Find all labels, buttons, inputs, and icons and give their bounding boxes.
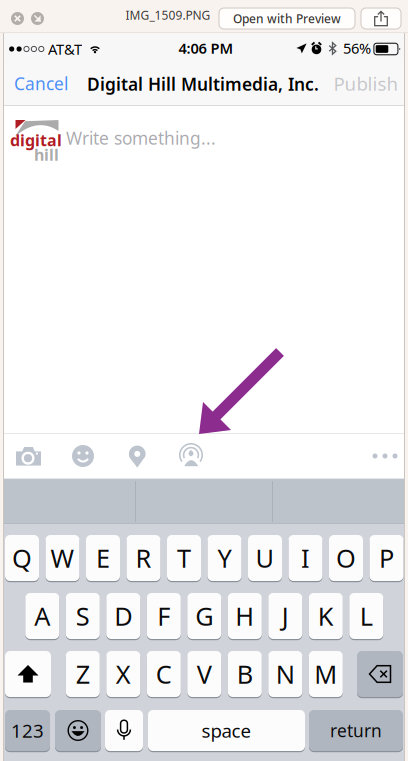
button[interactable]: Share (361, 8, 401, 29)
staticText: 123 (11, 718, 44, 743)
staticText: 4:06 PM (178, 38, 233, 58)
staticText: Z (76, 657, 90, 691)
staticText: hill (34, 144, 59, 165)
staticText: A (34, 599, 50, 633)
staticText: E (96, 541, 110, 575)
staticText: S (76, 599, 90, 633)
button[interactable]: return (309, 709, 403, 752)
button[interactable]: M (309, 650, 343, 698)
button[interactable]: U (248, 534, 282, 582)
button[interactable]: S (66, 592, 100, 640)
staticText: H (235, 599, 254, 633)
button[interactable]: Tag people (178, 443, 204, 469)
staticText: F (157, 599, 170, 633)
button[interactable]: F (147, 592, 181, 640)
staticText: G (195, 599, 213, 633)
staticText: AT&T (48, 39, 82, 59)
button[interactable]: A (25, 592, 59, 640)
button[interactable]: P (369, 534, 403, 582)
staticText: X (116, 657, 131, 691)
staticText: Open with Preview (233, 10, 341, 26)
staticText: K (318, 599, 334, 633)
staticText: space (201, 718, 251, 743)
button[interactable]: X (106, 650, 140, 698)
button[interactable]: Z (66, 650, 100, 698)
staticText: P (379, 541, 394, 575)
button[interactable]: R (126, 534, 160, 582)
staticText: Q (12, 541, 32, 575)
button[interactable]: Feeling (72, 445, 94, 467)
staticText: Digital Hill Multimedia, Inc. (87, 72, 319, 95)
staticText: IMG_1509.PNG (125, 7, 210, 23)
button[interactable]: Q (5, 534, 39, 582)
button[interactable]: Y (207, 534, 241, 582)
button[interactable]: O (329, 534, 363, 582)
staticText: Cancel (14, 72, 68, 95)
staticText: return (330, 719, 382, 742)
button[interactable] (105, 709, 143, 752)
button[interactable]: Location (128, 445, 146, 468)
button[interactable]: K (309, 592, 343, 640)
button[interactable]: Cancel (8, 62, 74, 105)
button[interactable]: H (228, 592, 262, 640)
button[interactable]: Camera (16, 446, 41, 466)
button[interactable] (357, 650, 403, 698)
staticText: V (197, 657, 212, 691)
staticText: T (177, 541, 191, 575)
button[interactable]: L (349, 592, 383, 640)
button[interactable]: More (368, 444, 402, 468)
staticText: D (114, 599, 132, 633)
staticText: N (276, 657, 295, 691)
staticText: B (237, 657, 253, 691)
button[interactable]: C (147, 650, 181, 698)
button[interactable]: E (86, 534, 120, 582)
button[interactable]: space (148, 709, 305, 752)
button[interactable]: I (288, 534, 322, 582)
staticText: I (301, 541, 310, 575)
button[interactable]: J (268, 592, 302, 640)
button[interactable]: V (187, 650, 221, 698)
button[interactable]: N (268, 650, 302, 698)
staticText: digital (10, 129, 62, 151)
staticText: R (135, 541, 151, 575)
staticText: Y (217, 541, 231, 575)
button[interactable]: D (106, 592, 140, 640)
button[interactable]: Markup (31, 12, 44, 25)
staticText: Publish (333, 71, 398, 96)
button[interactable]: Open with Preview (219, 8, 355, 29)
button[interactable]: 123 (5, 709, 50, 752)
staticText: C (156, 657, 172, 691)
staticText: U (255, 541, 274, 575)
button[interactable]: W (45, 534, 79, 582)
staticText: W (50, 541, 74, 575)
staticText: 56% (343, 38, 371, 58)
staticText: J (282, 599, 289, 633)
staticText: Write something... (66, 126, 216, 149)
button[interactable]: G (187, 592, 221, 640)
button[interactable] (5, 650, 51, 698)
button[interactable]: B (228, 650, 262, 698)
button[interactable]: Publish (331, 62, 401, 105)
staticText: M (314, 657, 337, 691)
button[interactable]: Close (11, 12, 24, 25)
button[interactable]: T (167, 534, 201, 582)
staticText: O (336, 541, 356, 575)
button[interactable] (55, 709, 101, 752)
staticText: L (360, 599, 373, 633)
